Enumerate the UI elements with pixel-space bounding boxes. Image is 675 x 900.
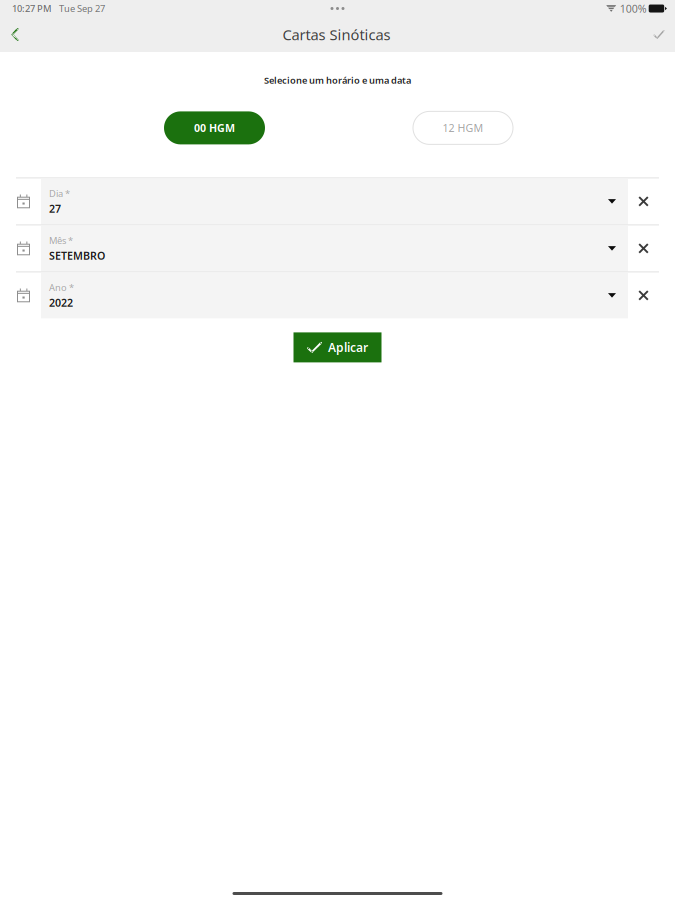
staticText: Mês * xyxy=(49,234,73,246)
button[interactable]: 00 HGM xyxy=(164,111,265,144)
staticText: Selecione um horário e uma data xyxy=(264,74,411,86)
button[interactable]: Confirmar xyxy=(643,17,675,52)
button[interactable]: Limpar xyxy=(628,178,659,224)
staticText: 100% xyxy=(620,1,647,16)
staticText: Tue Sep 27 xyxy=(59,2,105,15)
button[interactable]: 12 HGM xyxy=(413,111,513,144)
staticText: 12 HGM xyxy=(442,121,483,135)
button[interactable]: Mês * xyxy=(41,225,628,271)
staticText: Aplicar xyxy=(328,339,368,355)
button[interactable]: Limpar xyxy=(628,225,659,271)
staticText: Cartas Sinóticas xyxy=(282,25,390,44)
staticText: Dia * xyxy=(49,187,70,199)
staticText: SETEMBRO xyxy=(49,248,105,263)
button[interactable]: Voltar xyxy=(0,17,30,52)
button[interactable]: Limpar xyxy=(628,272,659,318)
staticText: 00 HGM xyxy=(194,121,235,135)
staticText: 10:27 PM xyxy=(12,2,52,15)
button[interactable]: Ano * xyxy=(41,272,628,318)
staticText: 2022 xyxy=(49,295,73,310)
button[interactable]: Dia * xyxy=(41,178,628,224)
staticText: 27 xyxy=(49,201,61,216)
staticText: Ano * xyxy=(49,281,74,293)
button[interactable]: Aplicar xyxy=(293,332,381,362)
